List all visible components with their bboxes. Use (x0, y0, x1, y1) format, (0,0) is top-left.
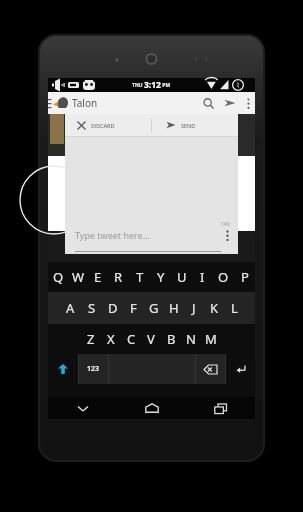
button[interactable]: W (68, 262, 88, 292)
staticText: H (169, 299, 179, 317)
staticText: I (200, 268, 205, 286)
staticText: SEND (181, 122, 196, 129)
staticText: L (231, 299, 238, 317)
staticText: Type tweet here... (75, 229, 150, 241)
button[interactable]: U (171, 262, 192, 292)
staticText: C (127, 330, 136, 348)
staticText: E (94, 268, 102, 286)
button[interactable]: More options (241, 92, 255, 114)
button[interactable]: H (164, 292, 184, 324)
button[interactable]: Shift (48, 354, 78, 384)
staticText: M (205, 330, 217, 348)
staticText: O (218, 268, 229, 286)
button[interactable]: J (184, 292, 204, 324)
button[interactable]: DISCARD (65, 114, 151, 136)
staticText: Talon (72, 96, 98, 110)
staticText: PM (161, 82, 171, 89)
button[interactable]: I (192, 262, 213, 292)
staticText: A (66, 299, 75, 317)
button[interactable]: Compose tweet (219, 92, 241, 114)
button[interactable]: X (101, 324, 121, 354)
button[interactable]: Z (81, 324, 101, 354)
staticText: 140 (221, 221, 230, 228)
button[interactable]: K (204, 292, 224, 324)
staticText: DISCARD (91, 122, 115, 129)
button[interactable]: Y (150, 262, 171, 292)
staticText: J (192, 299, 196, 317)
button[interactable]: C (121, 324, 141, 354)
staticText: Trial will expire soon. Upgrade in Setti… (89, 272, 215, 281)
button[interactable]: Trial will expire soon. Upgrade in Setti… (48, 271, 255, 282)
button[interactable]: R (108, 262, 129, 292)
button[interactable]: Backspace (196, 354, 225, 384)
button[interactable]: Home (117, 397, 186, 419)
button[interactable]: L (224, 292, 244, 324)
button[interactable]: Hide keyboard (48, 397, 117, 419)
button[interactable]: Navigation drawer (48, 92, 53, 114)
staticText: U (177, 268, 187, 286)
button[interactable]: Recent apps (186, 397, 255, 419)
button[interactable]: F (123, 292, 144, 324)
staticText: T (136, 268, 144, 286)
button[interactable]: Search (197, 92, 219, 114)
staticText: 123 (87, 364, 100, 374)
staticText: K (210, 299, 219, 317)
staticText: P (241, 268, 249, 286)
staticText: R (114, 268, 123, 286)
button[interactable]: G (144, 292, 164, 324)
button[interactable]: A (60, 292, 81, 324)
button[interactable]: Attachment options (220, 226, 234, 244)
staticText: THU (132, 82, 144, 89)
button[interactable]: Enter (226, 354, 255, 384)
button[interactable]: O (213, 262, 234, 292)
staticText: B (167, 330, 176, 348)
staticText: Y (157, 268, 165, 286)
staticText: N (186, 330, 196, 348)
button[interactable]: S (81, 292, 102, 324)
button[interactable]: Q (48, 262, 68, 292)
button[interactable]: SEND (152, 114, 238, 136)
staticText: D (108, 299, 118, 317)
button[interactable]: T (129, 262, 150, 292)
button[interactable]: V (141, 324, 161, 354)
button[interactable]: 123 (79, 354, 108, 384)
button[interactable]: N (181, 324, 201, 354)
staticText: Z (87, 330, 95, 348)
staticText: W (72, 268, 85, 286)
staticText: S (88, 299, 96, 317)
staticText: 3:12 (144, 79, 161, 91)
button[interactable]: M (201, 324, 221, 354)
staticText: G (149, 299, 159, 317)
button[interactable]: P (234, 262, 255, 292)
staticText: Q (53, 268, 64, 286)
staticText: V (147, 330, 155, 348)
button[interactable]: B (161, 324, 181, 354)
staticText: F (130, 299, 137, 317)
staticText: X (107, 330, 115, 348)
button[interactable]: D (102, 292, 123, 324)
button[interactable]: E (88, 262, 108, 292)
